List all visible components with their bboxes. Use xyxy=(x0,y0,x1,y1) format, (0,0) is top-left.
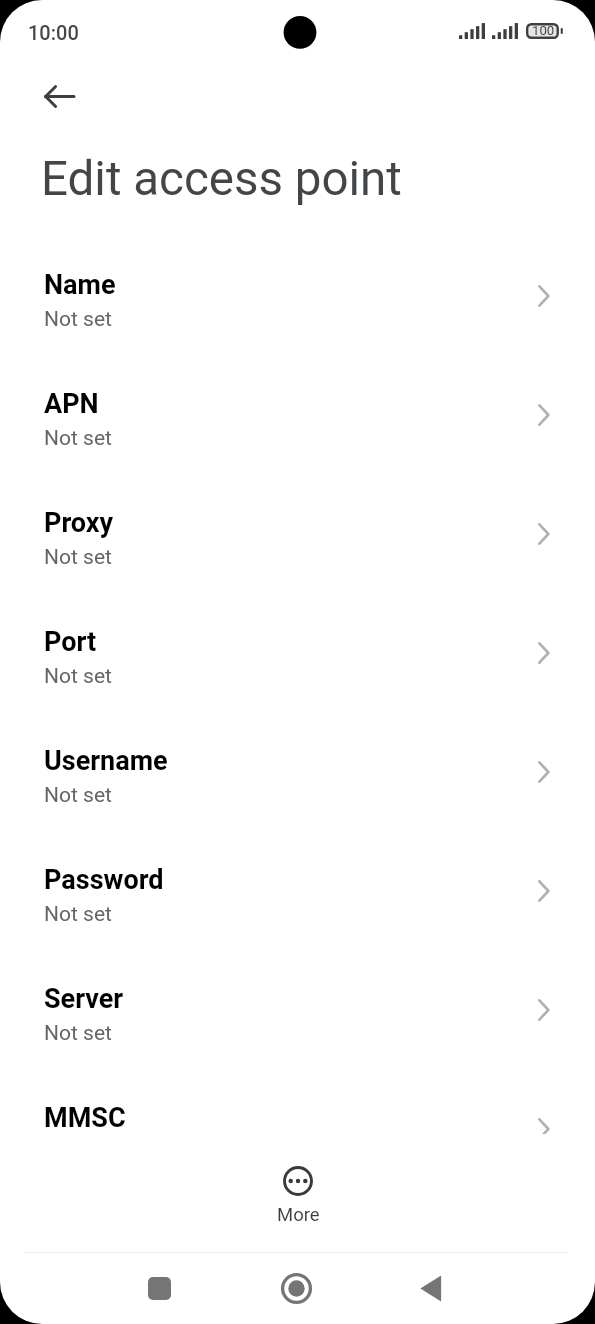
staticText: Port xyxy=(44,626,97,658)
staticText: Not set xyxy=(44,902,112,927)
staticText: Server xyxy=(44,983,124,1015)
button[interactable]: Back xyxy=(404,1260,460,1316)
button[interactable]: Proxy xyxy=(0,478,595,597)
staticText: Edit access point xyxy=(41,151,402,207)
staticText: Username xyxy=(44,745,168,777)
button[interactable]: Password xyxy=(0,835,595,954)
staticText: Proxy xyxy=(44,507,114,539)
button[interactable]: Recent apps xyxy=(131,1260,187,1316)
staticText: Not set xyxy=(44,426,112,451)
staticText: Not set xyxy=(44,545,112,570)
button[interactable]: MMSC xyxy=(0,1073,595,1134)
staticText: Not set xyxy=(44,1021,112,1046)
staticText: 100 xyxy=(532,23,555,38)
staticText: Name xyxy=(44,269,116,301)
staticText: MMSC xyxy=(44,1102,126,1134)
staticText: 10:00 xyxy=(28,21,79,44)
staticText: Not set xyxy=(44,783,112,808)
button[interactable]: Username xyxy=(0,716,595,835)
button[interactable]: Server xyxy=(0,954,595,1073)
button[interactable]: Home xyxy=(268,1260,324,1316)
staticText: Not set xyxy=(44,664,112,689)
button[interactable]: Name xyxy=(0,240,595,359)
staticText: APN xyxy=(44,388,99,420)
button[interactable]: More xyxy=(250,1165,346,1226)
button[interactable]: APN xyxy=(0,359,595,478)
staticText: More xyxy=(277,1204,320,1226)
staticText: Password xyxy=(44,864,164,896)
button[interactable]: Port xyxy=(0,597,595,716)
button[interactable]: Navigate up xyxy=(33,70,85,122)
staticText: Not set xyxy=(44,307,112,332)
